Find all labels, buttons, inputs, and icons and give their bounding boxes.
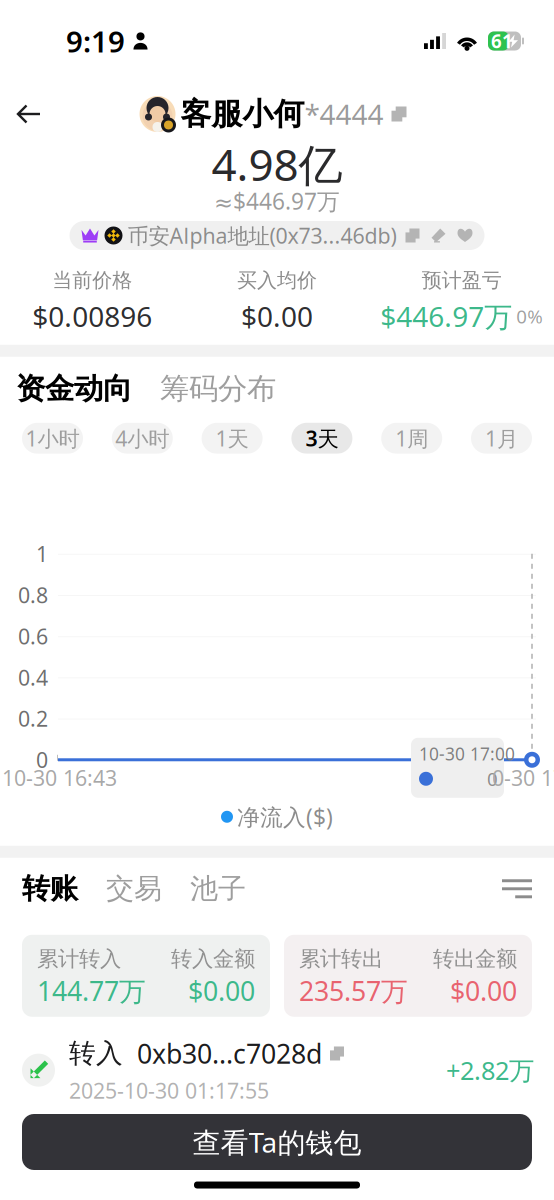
staticText: 转出金额 (433, 946, 517, 972)
staticText: $0.00896 (32, 298, 152, 335)
button[interactable]: 查看Ta的钱包 (22, 1114, 532, 1170)
staticText: $0.00 (450, 973, 517, 1008)
staticText: 144.77万 (37, 973, 146, 1008)
button[interactable]: 1周 (381, 423, 442, 454)
staticText: $446.97万 (380, 298, 512, 335)
staticText: 10-30 16:43 (2, 764, 117, 792)
button[interactable]: 币安Alpha地址(0x73...46db) (69, 221, 484, 250)
staticText: 资金动向 (16, 371, 132, 407)
staticText: 1 (36, 540, 48, 568)
staticText: $0.00 (188, 973, 255, 1008)
staticText: 0.8 (18, 581, 48, 609)
staticText: 买入均价 (237, 268, 317, 293)
staticText: 筹码分布 (160, 371, 276, 407)
staticText: 客服小何 (180, 95, 304, 133)
staticText: 9:19 (66, 21, 125, 60)
button[interactable]: 资金动向 (16, 371, 132, 407)
staticText: 查看Ta的钱包 (192, 1123, 361, 1161)
button[interactable]: 1天 (202, 423, 263, 454)
staticText: 池子 (190, 872, 246, 906)
staticText: 235.57万 (299, 973, 408, 1008)
button[interactable]: 转账 (22, 872, 78, 906)
staticText: 3天 (305, 424, 338, 452)
staticText: +2.82万 (446, 1053, 534, 1087)
staticText: 累计转出 (299, 946, 383, 972)
staticText: 0 (36, 746, 48, 774)
staticText: ≈$446.97万 (214, 186, 340, 216)
staticText: 1月 (485, 424, 518, 452)
staticText: *4444 (304, 95, 383, 133)
staticText: 转账 (22, 872, 78, 906)
staticText: 0.6 (18, 622, 48, 650)
staticText: 累计转入 (37, 946, 121, 972)
staticText: 4小时 (115, 424, 169, 452)
staticText: 10-30 17:00 (419, 742, 515, 765)
staticText: 0% (516, 304, 543, 329)
button[interactable]: Copy name (383, 98, 414, 129)
staticText: 0xb30...c7028d (137, 1036, 322, 1071)
button[interactable]: 4小时 (112, 423, 173, 454)
staticText: 4.98亿 (211, 135, 342, 193)
button[interactable]: Sort (496, 873, 538, 904)
button[interactable]: 1月 (471, 423, 532, 454)
staticText: 1小时 (25, 424, 79, 452)
staticText: 转入金额 (171, 946, 255, 972)
button[interactable]: 1小时 (22, 423, 83, 454)
staticText: 币安Alpha地址(0x73...46db) (127, 221, 396, 250)
staticText: 0.4 (18, 663, 48, 691)
staticText: 当前价格 (52, 268, 132, 293)
staticText: 0 (487, 766, 498, 791)
staticText: $0.00 (241, 298, 313, 335)
staticText: 交易 (106, 872, 162, 906)
staticText: 净流入($) (237, 802, 333, 832)
staticText: 预计盈亏 (422, 268, 502, 293)
staticText: 2025-10-30 01:17:55 (69, 1076, 269, 1104)
staticText: 1天 (216, 424, 249, 452)
staticText: 0-30 17 (492, 764, 554, 792)
staticText: 61 (491, 29, 513, 53)
staticText: 转入 (69, 1037, 123, 1070)
button[interactable]: 3天 (291, 423, 352, 454)
staticText: 0.2 (18, 704, 48, 733)
staticText: 1周 (395, 424, 428, 452)
button[interactable]: 筹码分布 (132, 371, 276, 407)
button[interactable]: Back (0, 92, 58, 136)
button[interactable]: 转入 (0, 1017, 554, 1104)
button[interactable]: 交易 (78, 872, 162, 906)
button[interactable]: 池子 (162, 872, 246, 906)
